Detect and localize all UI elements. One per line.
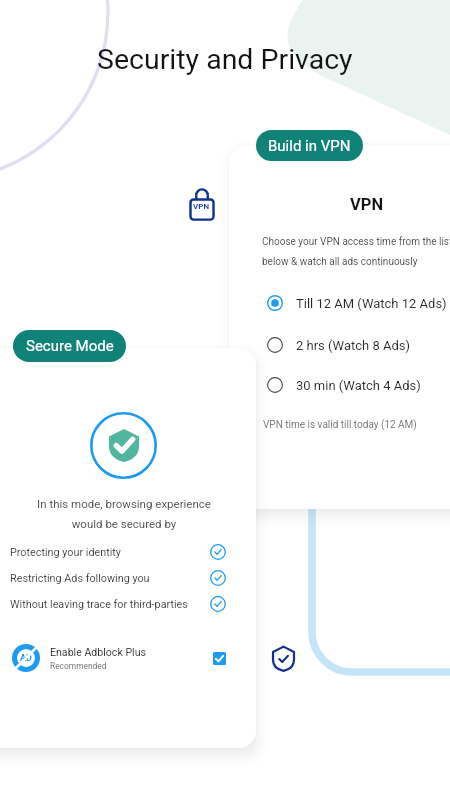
button[interactable]: Restricting Ads following you bbox=[0, 570, 256, 586]
staticText: VPN bbox=[193, 202, 210, 211]
staticText: VPN bbox=[350, 195, 384, 214]
other: VPN bbox=[190, 186, 214, 220]
staticText: Choose your VPN access time from the lis… bbox=[262, 236, 450, 267]
staticText: Restricting Ads following you bbox=[10, 572, 210, 585]
staticText: 2 hrs (Watch 8 Ads) bbox=[296, 338, 411, 353]
staticText: Recommended bbox=[50, 661, 107, 671]
button[interactable]: 2 hrs (Watch 8 Ads) bbox=[229, 335, 450, 355]
staticText: VPN time is valid till today (12 AM) bbox=[263, 419, 417, 431]
staticText: Build in VPN bbox=[268, 137, 351, 155]
staticText: Without leaving trace for third-parties bbox=[10, 598, 210, 611]
staticText: AD bbox=[20, 653, 32, 664]
staticText: Till 12 AM (Watch 12 Ads) bbox=[296, 296, 447, 311]
other: Adblock bbox=[12, 644, 40, 672]
button[interactable]: 30 min (Watch 4 Ads) bbox=[229, 375, 450, 395]
button[interactable]: Enable Adblock Plus checkbox bbox=[213, 652, 226, 665]
staticText: Security and Privacy bbox=[97, 43, 353, 76]
button[interactable]: Build in VPN bbox=[256, 130, 363, 161]
button[interactable]: Adblock bbox=[0, 641, 256, 675]
staticText: In this mode, browsing experience would … bbox=[0, 497, 256, 531]
staticText: Protecting your identity bbox=[10, 546, 210, 559]
button[interactable]: Secure Mode bbox=[13, 330, 126, 362]
button[interactable]: Without leaving trace for third-parties bbox=[0, 596, 256, 612]
button[interactable]: Protecting your identity bbox=[0, 544, 256, 560]
staticText: Enable Adblock Plus bbox=[50, 646, 146, 658]
staticText: Secure Mode bbox=[26, 337, 114, 355]
button[interactable]: Till 12 AM (Watch 12 Ads) bbox=[229, 293, 450, 313]
other: Secure bbox=[271, 645, 296, 672]
staticText: 30 min (Watch 4 Ads) bbox=[296, 378, 421, 393]
